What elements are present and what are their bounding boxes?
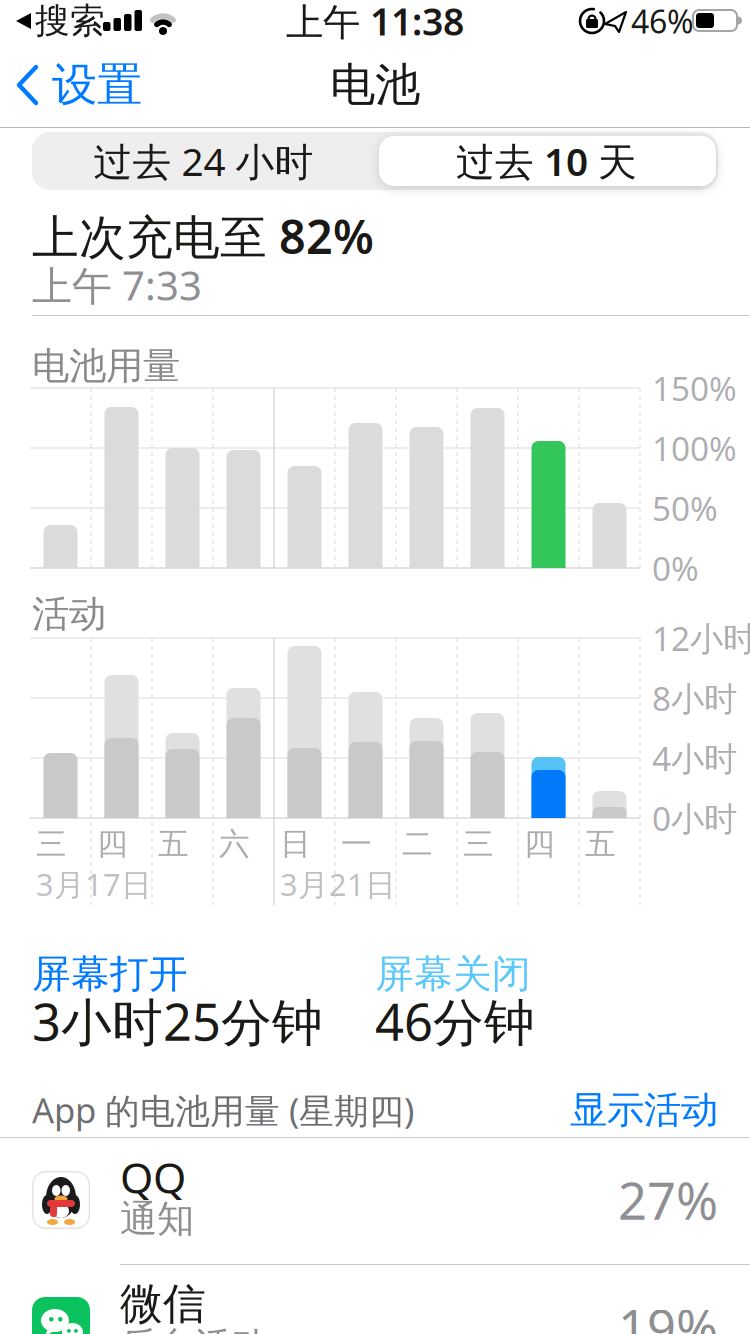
staticText: 电池用量 [32,343,180,389]
button[interactable]: 过去 24 小时 [32,132,375,190]
button[interactable]: 过去 10 天 [375,132,718,190]
button[interactable]: 设置 [12,60,142,110]
staticText: 46分钟 [375,987,535,1055]
staticText: 一 [341,825,372,863]
staticText: 微信 [120,1278,206,1330]
staticText: 二 [402,825,433,863]
staticText: 设置 [52,57,142,113]
staticText: 上午 7:33 [32,258,202,311]
staticText: 后台活动 [120,1323,268,1334]
staticText: 屏幕关闭 [375,950,531,998]
staticText: 4小时 [652,736,737,780]
staticText: 电池 [330,57,420,113]
staticText: 通知 [120,1196,194,1242]
staticText: 显示活动 [570,1087,718,1133]
staticText: 46% [631,0,694,42]
staticText: 活动 [32,591,106,637]
staticText: 六 [219,825,250,863]
button[interactable]: 微信 [0,1264,750,1334]
staticText: App 的电池用量 (星期四) [32,1087,414,1133]
staticText: 过去 24 小时 [93,135,313,187]
staticText: 四 [524,825,555,863]
staticText: QQ [120,1149,186,1205]
staticText: 8小时 [652,676,737,720]
staticText: 上次充电至 82% [32,205,374,267]
staticText: 0小时 [652,796,737,840]
staticText: 三 [463,825,494,863]
staticText: 过去 10 天 [456,135,637,187]
staticText: 0% [652,546,699,590]
staticText: 3月21日 [280,864,396,904]
staticText: 150% [652,366,737,410]
staticText: 100% [652,426,737,470]
staticText: 3小时25分钟 [32,987,323,1055]
staticText: 五 [158,825,189,863]
button[interactable]: QQ [0,1137,750,1264]
staticText: 上午 11:38 [286,0,464,46]
button[interactable]: 过去 10 天 [379,136,716,186]
staticText: 搜索 [35,0,105,42]
staticText: 27% [618,1166,718,1234]
staticText: 日 [280,825,311,863]
staticText: 三 [36,825,67,863]
staticText: 屏幕打开 [32,950,188,998]
staticText: 四 [97,825,128,863]
staticText: 五 [585,825,616,863]
staticText: 50% [652,486,718,530]
staticText: 19% [618,1293,718,1334]
staticText: 12小时 [652,616,750,660]
button[interactable]: 显示活动 [570,1087,718,1133]
staticText: 3月17日 [36,864,152,904]
